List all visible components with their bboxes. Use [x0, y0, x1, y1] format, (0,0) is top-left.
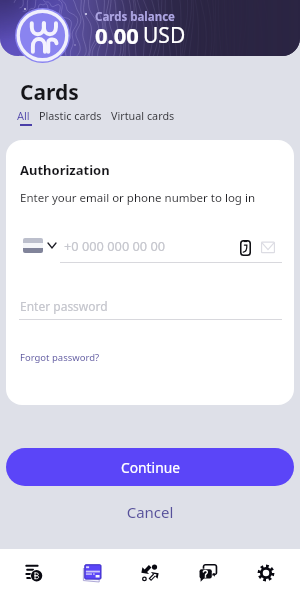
button[interactable]: Continue: [6, 448, 294, 486]
button[interactable]: All: [17, 108, 30, 123]
staticText: Enter password: [20, 298, 108, 314]
button[interactable]: Support: [179, 549, 237, 589]
button[interactable]: Cancel: [0, 502, 300, 522]
button[interactable]: Settings: [237, 549, 295, 589]
staticText: Cards balance: [95, 9, 175, 25]
button[interactable]: Cards: [62, 549, 121, 589]
staticText: All: [17, 108, 30, 123]
button[interactable]: Logo: [15, 8, 70, 63]
button[interactable]: Forgot password?: [20, 351, 100, 364]
button[interactable]: Exchange: [121, 549, 179, 589]
button[interactable]: Plastic cards: [39, 108, 102, 123]
staticText: Plastic cards: [39, 108, 102, 123]
staticText: USD: [143, 21, 186, 50]
button[interactable]: Wallet: [3, 549, 62, 589]
staticText: 0.00: [95, 20, 139, 50]
staticText: Forgot password?: [20, 351, 100, 364]
staticText: Continue: [121, 458, 180, 477]
staticText: Cards: [20, 78, 79, 107]
staticText: Virtual cards: [111, 108, 175, 123]
staticText: Authorization: [20, 161, 110, 179]
button[interactable]: Use email: [261, 237, 275, 257]
button[interactable]: Virtual cards: [111, 108, 175, 123]
staticText: +0 000 000 00 00: [64, 237, 166, 254]
staticText: Enter your email or phone number to log …: [20, 190, 256, 206]
button[interactable]: Use phone number: [240, 240, 251, 256]
